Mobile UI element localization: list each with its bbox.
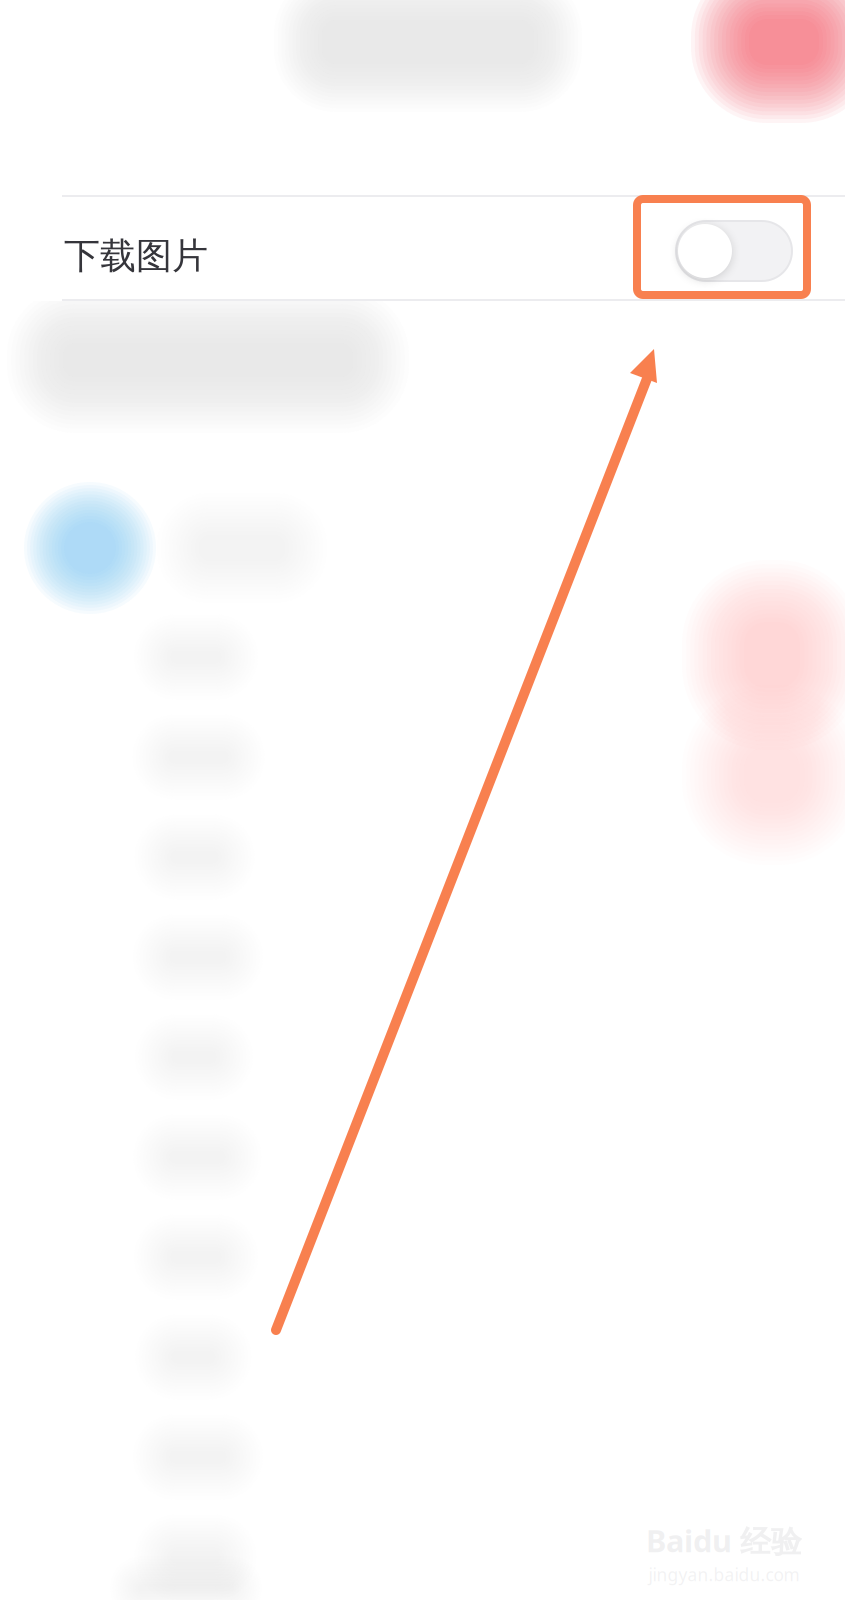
staticText: Baidu 经验: [646, 1520, 802, 1561]
staticText: 下载图片: [64, 234, 208, 278]
button[interactable]: 下载图片: [0, 195, 845, 301]
staticText: jingyan.baidu.com: [648, 1563, 799, 1586]
